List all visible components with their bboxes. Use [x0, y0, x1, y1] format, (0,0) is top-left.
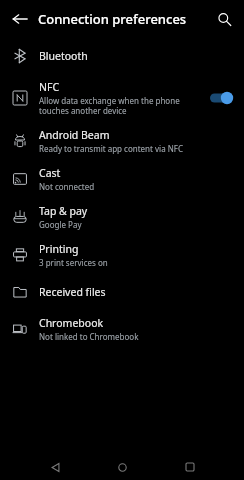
- staticText: Tap & pay: [39, 204, 88, 218]
- staticText: Cast: [39, 166, 61, 180]
- button[interactable]: Android Beam: [0, 122, 244, 160]
- staticText: Not linked to Chromebook: [39, 331, 139, 342]
- staticText: Printing: [39, 242, 79, 256]
- button[interactable]: Search: [210, 5, 238, 33]
- staticText: Chromebook: [39, 316, 104, 330]
- button[interactable]: Cast: [0, 160, 244, 198]
- button[interactable]: NFC toggle: [206, 87, 236, 109]
- staticText: 3 print services on: [39, 257, 108, 268]
- button[interactable]: Received files: [0, 274, 244, 310]
- staticText: NFC: [39, 80, 60, 94]
- button[interactable]: Printing: [0, 236, 244, 274]
- staticText: Received files: [39, 285, 106, 299]
- button[interactable]: Bluetooth: [0, 38, 244, 74]
- staticText: Google Pay: [39, 219, 82, 230]
- button[interactable]: NFC: [0, 74, 244, 122]
- staticText: Bluetooth: [39, 49, 88, 63]
- button[interactable]: Tap & pay: [0, 198, 244, 236]
- staticText: Allow data exchange when the phone touch…: [39, 95, 200, 116]
- button[interactable]: Recent apps: [177, 454, 203, 480]
- staticText: Android Beam: [39, 128, 110, 142]
- staticText: Connection preferences: [38, 10, 187, 28]
- button[interactable]: Back: [42, 454, 68, 480]
- button[interactable]: Chromebook: [0, 310, 244, 348]
- button[interactable]: Back: [6, 5, 34, 33]
- button[interactable]: Home: [109, 454, 135, 480]
- staticText: Not connected: [39, 181, 95, 192]
- staticText: Ready to transmit app content via NFC: [39, 143, 183, 154]
